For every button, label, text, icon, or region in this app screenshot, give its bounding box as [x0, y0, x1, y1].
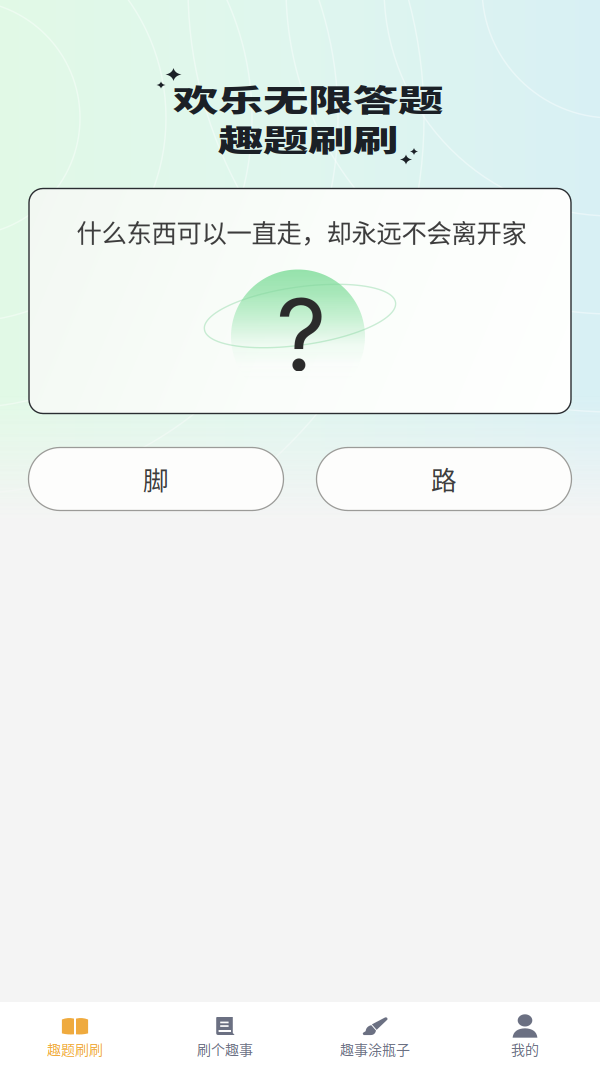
staticText: 趣题刷刷 — [218, 105, 398, 171]
staticText: 我的 — [511, 1039, 539, 1059]
staticText: 欢乐无限答题 — [173, 65, 443, 131]
staticText: 什么东西可以一直走，却永远不会离开家 — [76, 213, 526, 250]
staticText: 脚 — [143, 460, 169, 498]
staticText: 刷个趣事 — [197, 1039, 253, 1059]
staticText: 趣题刷刷 — [47, 1039, 103, 1059]
staticText: 趣事涂瓶子 — [340, 1039, 410, 1059]
staticText: 路 — [431, 460, 457, 498]
button[interactable]: 刷个趣事 — [150, 1002, 300, 1067]
button[interactable]: 路 — [316, 447, 571, 510]
staticText: ? — [276, 275, 326, 394]
button[interactable]: 脚 — [28, 447, 283, 510]
button[interactable]: 趣事涂瓶子 — [300, 1002, 450, 1067]
button[interactable]: 我的 — [450, 1002, 600, 1067]
button[interactable]: 趣题刷刷 — [0, 1002, 150, 1067]
